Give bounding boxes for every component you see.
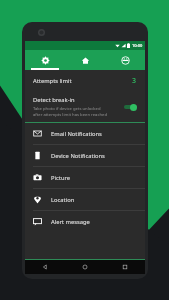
button[interactable]: Alert message [25, 211, 145, 232]
button[interactable]: Device Notifications [25, 145, 145, 166]
staticText: Take photo if device gets unlocked [33, 106, 101, 112]
button[interactable]: Home [65, 50, 105, 70]
button[interactable]: Profile [105, 50, 145, 70]
button[interactable] [124, 103, 137, 111]
staticText: Attempts limit [33, 77, 72, 85]
button[interactable]: Settings [25, 50, 65, 70]
staticText: Email Notifications [51, 130, 102, 138]
staticText: Device Notifications [51, 152, 105, 160]
staticText: 10:00 [132, 43, 143, 48]
button[interactable]: Recents [105, 260, 145, 274]
staticText: Alert message [51, 218, 90, 226]
staticText: Detect break-in [33, 96, 75, 104]
staticText: Picture [51, 174, 71, 182]
button[interactable]: Email Notifications [25, 123, 145, 144]
staticText: 3 [132, 76, 137, 86]
button[interactable]: Picture [25, 167, 145, 188]
button[interactable]: Location [25, 189, 145, 210]
staticText: Location [51, 196, 75, 204]
button[interactable]: Home [65, 260, 105, 274]
staticText: after attempts limit has been reached [33, 112, 107, 118]
button[interactable]: Back [25, 260, 65, 274]
button[interactable]: Detect break-in [25, 92, 145, 122]
button[interactable]: Attempts limit [25, 70, 145, 92]
